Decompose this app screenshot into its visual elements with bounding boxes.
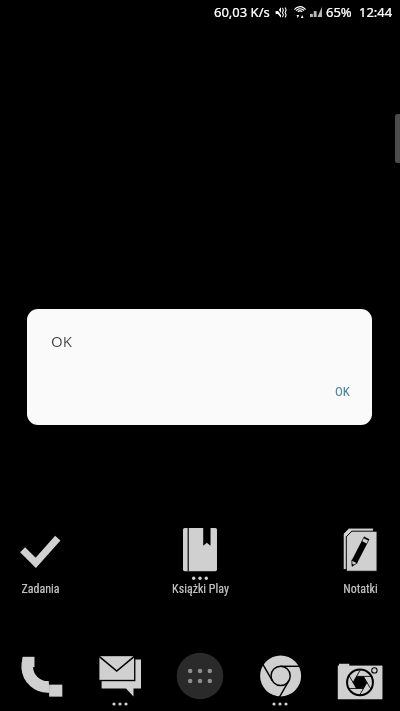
staticText: OK: [335, 384, 350, 399]
button[interactable]: Apps: [160, 652, 240, 700]
button[interactable]: OK: [326, 379, 359, 404]
staticText: OK: [51, 331, 73, 351]
button[interactable]: Camera: [320, 652, 400, 700]
staticText: Notatki: [343, 582, 378, 596]
staticText: 65%: [326, 3, 352, 21]
button[interactable]: Chrome: [240, 652, 320, 708]
button[interactable]: Notatki: [320, 524, 400, 596]
button[interactable]: Email: [80, 652, 160, 708]
button[interactable]: Książki Play: [160, 524, 240, 596]
button[interactable]: Zadania: [0, 524, 80, 596]
staticText: 12:44: [359, 3, 393, 21]
button[interactable]: Phone: [0, 652, 80, 700]
staticText: 60,03 K/s: [214, 3, 270, 21]
staticText: Zadania: [21, 582, 60, 596]
staticText: Książki Play: [172, 582, 229, 596]
